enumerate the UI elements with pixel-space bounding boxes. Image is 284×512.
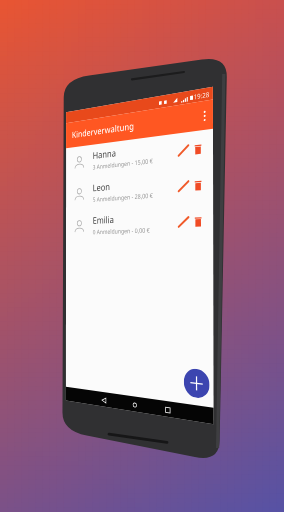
button[interactable]: More options [196, 105, 213, 127]
button[interactable]: Add child [184, 367, 210, 400]
staticText: Emilia [93, 213, 115, 227]
button[interactable]: Recent apps [161, 401, 174, 418]
staticText: Leon [93, 180, 111, 194]
button[interactable]: Back [98, 392, 109, 407]
staticText: Hanna [93, 146, 116, 162]
staticText: Kinderverwaltung [72, 119, 134, 141]
button[interactable]: Edit Emilia [175, 213, 192, 231]
staticText: 3 Anmeldungen - 15,00 € [93, 156, 153, 171]
button[interactable]: Home [128, 397, 140, 412]
button[interactable]: Emilia [66, 202, 213, 243]
button[interactable]: Edit Hanna [175, 141, 192, 160]
button[interactable]: Hanna [66, 129, 213, 180]
button[interactable]: Leon [66, 165, 213, 211]
staticText: 5 Anmeldungen - 28,00 € [93, 191, 153, 204]
button[interactable]: Delete Leon [193, 177, 203, 193]
staticText: 0 Anmeldungen - 0,00 € [93, 225, 150, 236]
button[interactable]: Edit Leon [175, 177, 192, 195]
button[interactable]: Delete Emilia [193, 214, 203, 229]
staticText: 19:28 [194, 89, 210, 102]
button[interactable]: Delete Hanna [193, 141, 203, 157]
